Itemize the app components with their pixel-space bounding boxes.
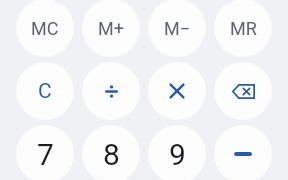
button[interactable]: M− [148, 0, 206, 57]
staticText: MC [31, 18, 59, 39]
button[interactable]: MC [16, 0, 74, 57]
staticText: 8 [103, 137, 120, 172]
button[interactable]: Multiply [148, 62, 206, 120]
staticText: 7 [37, 137, 54, 172]
button[interactable]: Divide [82, 62, 140, 120]
button[interactable]: 9 [148, 125, 206, 180]
staticText: MR [230, 18, 257, 39]
staticText: C [38, 79, 52, 104]
button[interactable]: MR [214, 0, 272, 57]
staticText: M+ [98, 18, 124, 39]
button[interactable]: 7 [16, 125, 74, 180]
staticText: 9 [169, 137, 186, 172]
button[interactable]: Backspace [214, 62, 272, 120]
button[interactable]: Clear [16, 62, 74, 120]
staticText: M− [164, 18, 191, 39]
button[interactable]: Minus [214, 125, 272, 180]
button[interactable]: M+ [82, 0, 140, 57]
button[interactable]: 8 [82, 125, 140, 180]
